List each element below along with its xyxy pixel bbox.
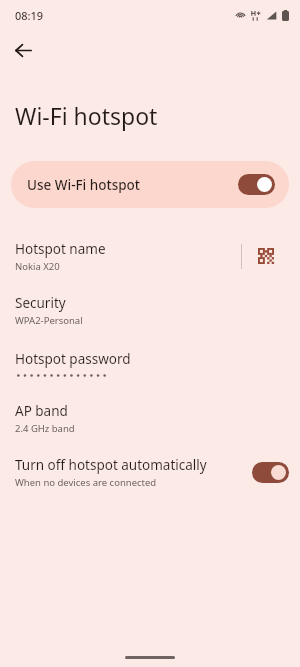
staticText: 08:19 [15,8,44,23]
button[interactable]: Hotspot password [0,337,300,391]
staticText: 2.4 GHz band [15,422,75,435]
staticText: AP band [15,402,68,420]
button[interactable]: AP band [0,391,300,445]
staticText: Security [15,294,66,312]
button[interactable]: Security [0,283,300,337]
staticText: Use Wi-Fi hotspot [27,176,140,194]
button[interactable]: Share hotspot QR code [242,234,289,278]
button[interactable]: Turn off hotspot automatically [0,445,300,499]
staticText: Hotspot password [15,350,131,368]
staticText: Wi-Fi hotspot [15,100,158,131]
staticText: When no devices are connected [15,476,157,489]
staticText: Hotspot name [15,240,106,258]
staticText: WPA2-Personal [15,314,83,327]
button[interactable]: Hotspot name [0,229,300,283]
button[interactable]: Use Wi-Fi hotspot [11,161,289,208]
staticText: Nokia X20 [15,260,60,273]
button[interactable]: Back [5,32,41,68]
staticText: Turn off hotspot automatically [15,456,207,474]
